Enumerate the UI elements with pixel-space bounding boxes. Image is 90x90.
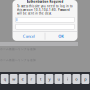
button[interactable]: r bbox=[28, 74, 36, 84]
staticText: e bbox=[22, 76, 24, 82]
button[interactable]: o bbox=[72, 74, 80, 84]
staticText: Authentication Required bbox=[26, 0, 63, 3]
button[interactable]: e bbox=[19, 74, 27, 84]
staticText: y bbox=[48, 76, 50, 82]
staticText: p bbox=[84, 76, 86, 82]
button[interactable]: t bbox=[36, 74, 44, 84]
staticText: To access this site you need to log in t… bbox=[17, 4, 73, 15]
staticText: q bbox=[4, 76, 6, 82]
staticText: OK bbox=[58, 34, 64, 39]
staticText: w bbox=[12, 76, 15, 82]
staticText: i bbox=[67, 76, 68, 82]
button[interactable]: i bbox=[63, 74, 71, 84]
staticText: r bbox=[31, 76, 33, 82]
button[interactable]: Cancel bbox=[12, 32, 45, 41]
button[interactable]: u bbox=[54, 74, 62, 84]
button[interactable]: OK bbox=[45, 32, 77, 41]
button[interactable]: p bbox=[81, 74, 89, 84]
staticText: ホーム画面へリンクを追加 bbox=[0, 58, 36, 62]
staticText: ホーム画面へリンクを追加 bbox=[0, 47, 36, 51]
staticText: Cancel bbox=[23, 34, 35, 39]
staticText: t bbox=[40, 76, 41, 82]
staticText: o bbox=[75, 76, 77, 82]
button[interactable]: y bbox=[45, 74, 53, 84]
staticText: u bbox=[57, 76, 59, 82]
button[interactable]: q bbox=[1, 74, 9, 84]
button[interactable]: w bbox=[10, 74, 18, 84]
